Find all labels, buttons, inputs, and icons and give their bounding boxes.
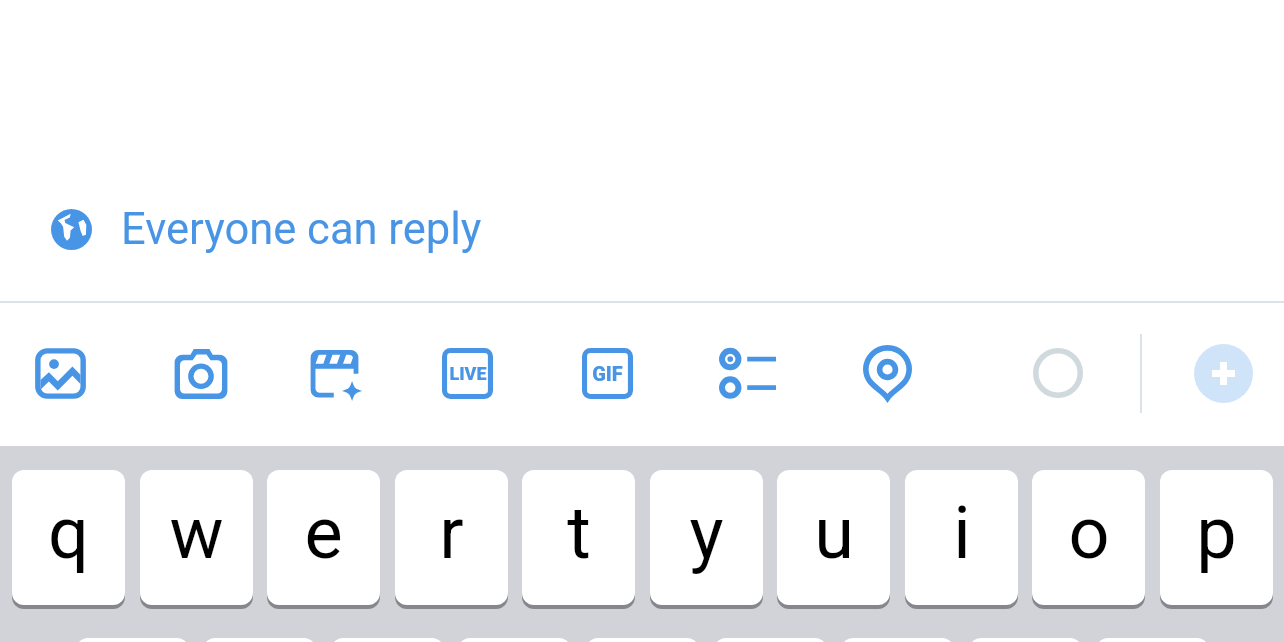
staticText: q	[48, 491, 89, 575]
button[interactable]: o	[1032, 470, 1145, 605]
staticText: e	[304, 491, 343, 575]
button[interactable]: Character count	[1019, 334, 1097, 412]
button[interactable]: w	[140, 470, 253, 605]
button[interactable]: y	[650, 470, 763, 605]
button[interactable]: u	[777, 470, 890, 605]
button[interactable]: q	[12, 470, 125, 605]
staticText: Everyone can reply	[121, 204, 482, 255]
button[interactable]: r	[395, 470, 508, 605]
staticText: i	[953, 491, 971, 575]
button[interactable]: s	[203, 638, 316, 642]
button[interactable]: Media	[18, 331, 103, 416]
staticText: GIF	[592, 362, 623, 385]
button[interactable]: Add another post	[1194, 344, 1253, 403]
button[interactable]: p	[1160, 470, 1273, 605]
button[interactable]: f	[458, 638, 571, 642]
button[interactable]: h	[714, 638, 827, 642]
button[interactable]: l	[1096, 638, 1209, 642]
staticText: LIVE	[449, 363, 487, 384]
button[interactable]: Location	[849, 331, 926, 416]
staticText: u	[814, 491, 854, 575]
button[interactable]: Video	[294, 332, 378, 416]
button[interactable]: g	[586, 638, 699, 642]
button[interactable]: i	[905, 470, 1018, 605]
staticText: r	[439, 491, 464, 575]
button[interactable]: LIVE	[428, 334, 507, 413]
button[interactable]: Everyone can reply	[27, 192, 506, 267]
button[interactable]: Camera	[158, 335, 244, 413]
button[interactable]: GIF	[568, 334, 647, 413]
staticText: t	[567, 491, 591, 575]
staticText: y	[689, 491, 724, 575]
staticText: w	[169, 491, 224, 575]
staticText: p	[1196, 491, 1237, 575]
button[interactable]: a	[76, 638, 189, 642]
button[interactable]: j	[841, 638, 954, 642]
button[interactable]: t	[522, 470, 635, 605]
staticText: o	[1068, 491, 1110, 575]
button[interactable]: k	[969, 638, 1082, 642]
button[interactable]: d	[331, 638, 444, 642]
button[interactable]: Poll	[705, 334, 790, 412]
button[interactable]: e	[267, 470, 380, 605]
